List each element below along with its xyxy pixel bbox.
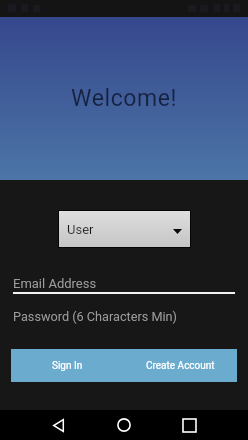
button[interactable]: Sign In (11, 349, 124, 382)
button[interactable]: Home (102, 410, 145, 440)
staticText: Sign In (52, 360, 83, 372)
button[interactable]: User (59, 211, 190, 247)
button[interactable]: Create Account (124, 349, 237, 382)
button[interactable]: Back (37, 410, 80, 440)
staticText: Welcome! (71, 85, 178, 112)
staticText: User (67, 222, 94, 237)
staticText: Password (6 Characters Min) (13, 309, 178, 324)
button[interactable]: Recent apps (168, 410, 211, 440)
staticText: Create Account (146, 360, 215, 372)
staticText: Email Address (13, 276, 97, 291)
